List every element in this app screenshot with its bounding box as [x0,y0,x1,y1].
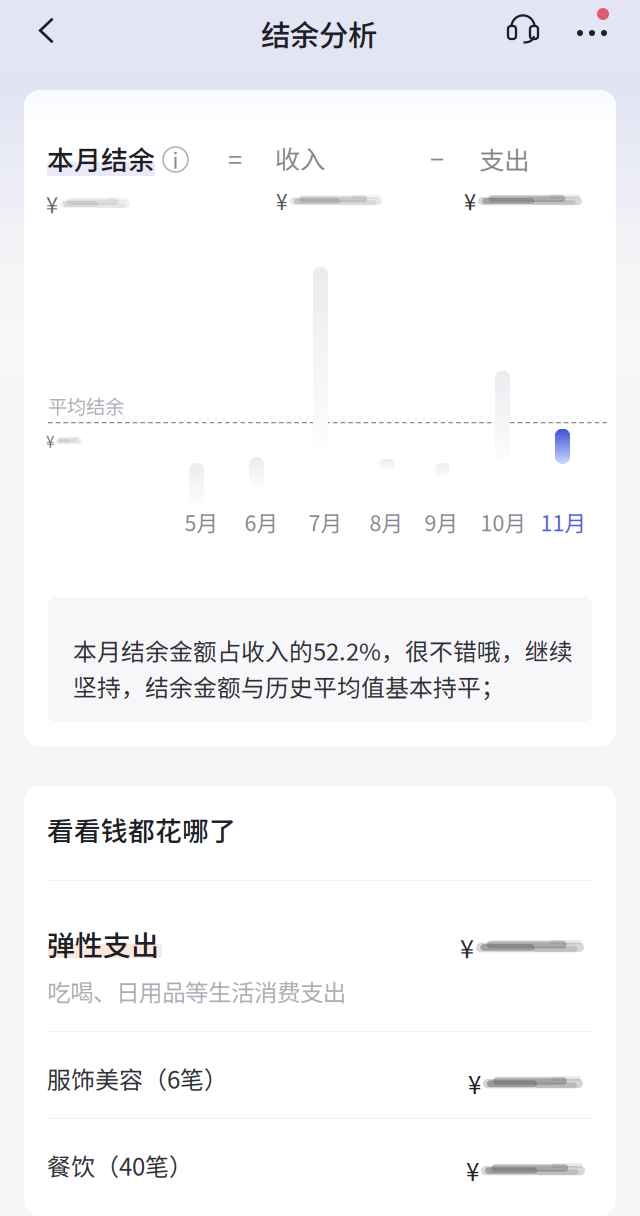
staticText: ¥ [46,430,54,452]
staticText: 6月 [244,507,277,537]
staticText: 餐饮（40笔） [47,1148,193,1183]
staticText: 服饰美容（6笔） [47,1061,228,1096]
staticText: 弹性支出 [47,924,159,964]
staticText: 看看钱都花哪了 [47,810,236,849]
staticText: ¥ [46,188,58,220]
staticText: ¥ [468,1066,481,1101]
staticText: 结余分析 [261,12,377,55]
staticText: − [430,139,444,176]
staticText: 本月结余金额占收入的52.2%，很不错哦，继续 [73,633,573,667]
staticText: 10月 [480,507,525,537]
staticText: ¥ [466,1153,479,1188]
button[interactable]: 服饰美容（6笔） [48,1031,592,1118]
button[interactable]: 餐饮（40笔） [48,1118,592,1205]
staticText: 平均结余 [48,391,124,419]
button[interactable]: More options [566,0,628,70]
staticText: ¥ [276,186,288,216]
staticText: 收入 [275,139,325,176]
staticText: 吃喝、日用品等生活消费支出 [47,974,346,1008]
staticText: i [172,144,178,175]
staticText: ¥ [464,185,476,217]
staticText: 5月 [184,507,217,537]
staticText: 9月 [424,507,457,537]
staticText: 8月 [369,507,402,537]
button[interactable]: 弹性支出 [48,881,592,1031]
staticText: 本月结余 [47,139,155,178]
staticText: 坚持，结余金额与历史平均值基本持平； [73,669,505,703]
button[interactable]: Back [8,0,72,70]
button[interactable]: Customer service [490,0,548,70]
staticText: = [228,139,242,176]
staticText: 支出 [479,140,529,177]
staticText: ¥ [460,929,474,965]
staticText: 7月 [308,507,341,537]
staticText: 11月 [540,507,585,537]
